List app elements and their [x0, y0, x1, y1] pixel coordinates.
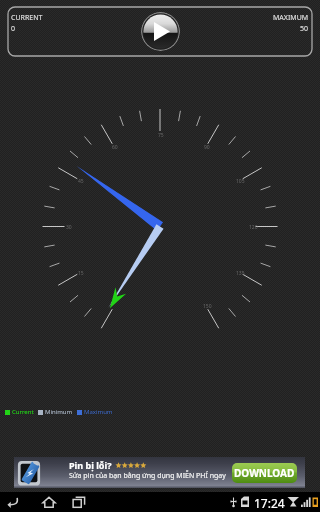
staticText: 90: [204, 144, 210, 151]
button[interactable]: Maximum: [77, 408, 113, 416]
staticText: 50: [300, 24, 309, 34]
staticText: Minimum: [45, 408, 73, 416]
staticText: 0: [11, 24, 16, 34]
staticText: 135: [236, 270, 245, 277]
staticText: 75: [158, 132, 164, 139]
staticText: 17:24: [254, 495, 285, 511]
staticText: 150: [203, 303, 212, 310]
button[interactable]: Start: [141, 12, 180, 51]
button[interactable]: DOWNLOAD: [232, 463, 297, 483]
button[interactable]: Back: [6, 495, 20, 509]
staticText: 45: [78, 178, 84, 185]
button[interactable]: Current: [5, 408, 34, 416]
staticText: Pin bị lỗi?: [69, 459, 112, 471]
staticText: Maximum: [84, 408, 113, 416]
staticText: 60: [112, 144, 118, 151]
staticText: 120: [249, 224, 258, 231]
staticText: DOWNLOAD: [234, 466, 295, 480]
button[interactable]: Recents: [72, 495, 86, 509]
staticText: 105: [236, 178, 245, 185]
staticText: Current: [12, 408, 34, 416]
staticText: CURRENT: [11, 13, 43, 23]
button[interactable]: Home: [42, 495, 56, 509]
staticText: 30: [66, 224, 72, 231]
button[interactable]: [14, 457, 305, 488]
button[interactable]: Minimum: [38, 408, 73, 416]
staticText: MAXIMUM: [273, 13, 309, 23]
staticText: 15: [78, 270, 84, 277]
staticText: Sửa pin của bạn bằng ứng dụng MIỄN PHÍ n…: [69, 471, 226, 481]
